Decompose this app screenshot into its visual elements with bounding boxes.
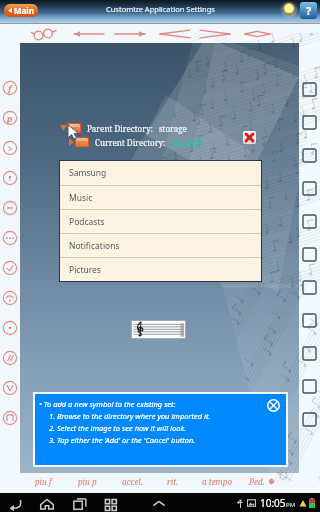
button[interactable]: Main <box>4 4 38 17</box>
button[interactable]: Slot 3 <box>303 149 316 162</box>
button[interactable]: Podcasts <box>60 210 261 233</box>
staticText: Main <box>14 5 34 16</box>
button[interactable]: Current Directory: <box>68 135 203 149</box>
button[interactable]: Ped. <box>249 474 275 488</box>
button[interactable]: Slot 10 <box>303 380 316 393</box>
staticText: Customize Application Settings <box>106 4 215 14</box>
button[interactable]: Symbol palette <box>0 0 20 512</box>
button[interactable]: Expand <box>150 495 167 512</box>
staticText: > <box>8 143 13 154</box>
button[interactable]: Samsung <box>60 161 261 185</box>
button[interactable]: Slot 11 <box>303 413 316 426</box>
staticText: Podcasts <box>69 216 105 228</box>
button[interactable]: Slot 1 <box>303 83 316 96</box>
button[interactable]: Pictures <box>60 258 261 281</box>
staticText: rit. <box>167 476 179 487</box>
staticText: ? <box>306 3 312 18</box>
button[interactable]: Slot 8 <box>303 314 316 327</box>
staticText: 2. Select the image to see how it will l… <box>49 423 187 435</box>
button[interactable]: Symbol preview <box>132 321 185 338</box>
button[interactable]: Slot 7 <box>303 281 316 294</box>
staticText: a tempo <box>202 476 232 487</box>
staticText: piu f <box>35 476 52 487</box>
staticText: Ped. <box>249 476 265 487</box>
staticText: Music <box>69 192 93 204</box>
button[interactable]: a tempo <box>202 474 232 488</box>
button[interactable]: rit. <box>167 474 179 488</box>
button[interactable]: Slot 2 <box>303 116 316 129</box>
button[interactable]: Notifications <box>60 234 261 257</box>
button[interactable]: Parent Directory: <box>60 121 187 135</box>
button[interactable]: Music <box>60 186 261 209</box>
staticText: Current Directory: <box>95 137 166 148</box>
button[interactable]: Back <box>6 495 23 512</box>
staticText: 10:05 <box>260 496 286 510</box>
button[interactable]: Help <box>300 2 317 19</box>
button[interactable]: Hint <box>280 1 298 19</box>
button[interactable]: Dynamics symbols <box>0 0 320 43</box>
button[interactable]: piu f <box>35 474 52 488</box>
button[interactable]: Home <box>38 495 55 512</box>
button[interactable]: Close <box>243 131 256 144</box>
button[interactable]: Screenshot <box>102 495 119 512</box>
button[interactable]: Dismiss <box>267 399 280 412</box>
button[interactable]: Slot 9 <box>303 347 316 360</box>
staticText: p <box>7 112 13 124</box>
staticText: accel. <box>122 476 143 487</box>
button[interactable]: Slot 4 <box>303 182 316 195</box>
staticText: Samsung <box>69 167 107 179</box>
staticText: Notifications <box>69 240 120 252</box>
staticText: 1. Browse to the directory where you imp… <box>49 411 211 423</box>
staticText: storage <box>159 123 187 134</box>
button[interactable]: piu p <box>78 474 97 488</box>
staticText: piu p <box>78 476 97 487</box>
button[interactable]: Slot 5 <box>303 215 316 228</box>
staticText: 3. Tap either the 'Add' or the 'Cancel' … <box>49 435 196 447</box>
staticText: Pictures <box>69 264 101 276</box>
button[interactable]: Slot 6 <box>303 248 316 261</box>
staticText: Parent Directory: <box>87 123 153 134</box>
button[interactable]: Recents <box>71 495 88 512</box>
button[interactable]: accel. <box>122 474 143 488</box>
staticText: • To add a new symbol to the existing se… <box>39 399 176 411</box>
staticText: sdcard0 <box>172 137 203 148</box>
staticText: PM <box>286 501 296 509</box>
staticText: f <box>8 82 12 94</box>
